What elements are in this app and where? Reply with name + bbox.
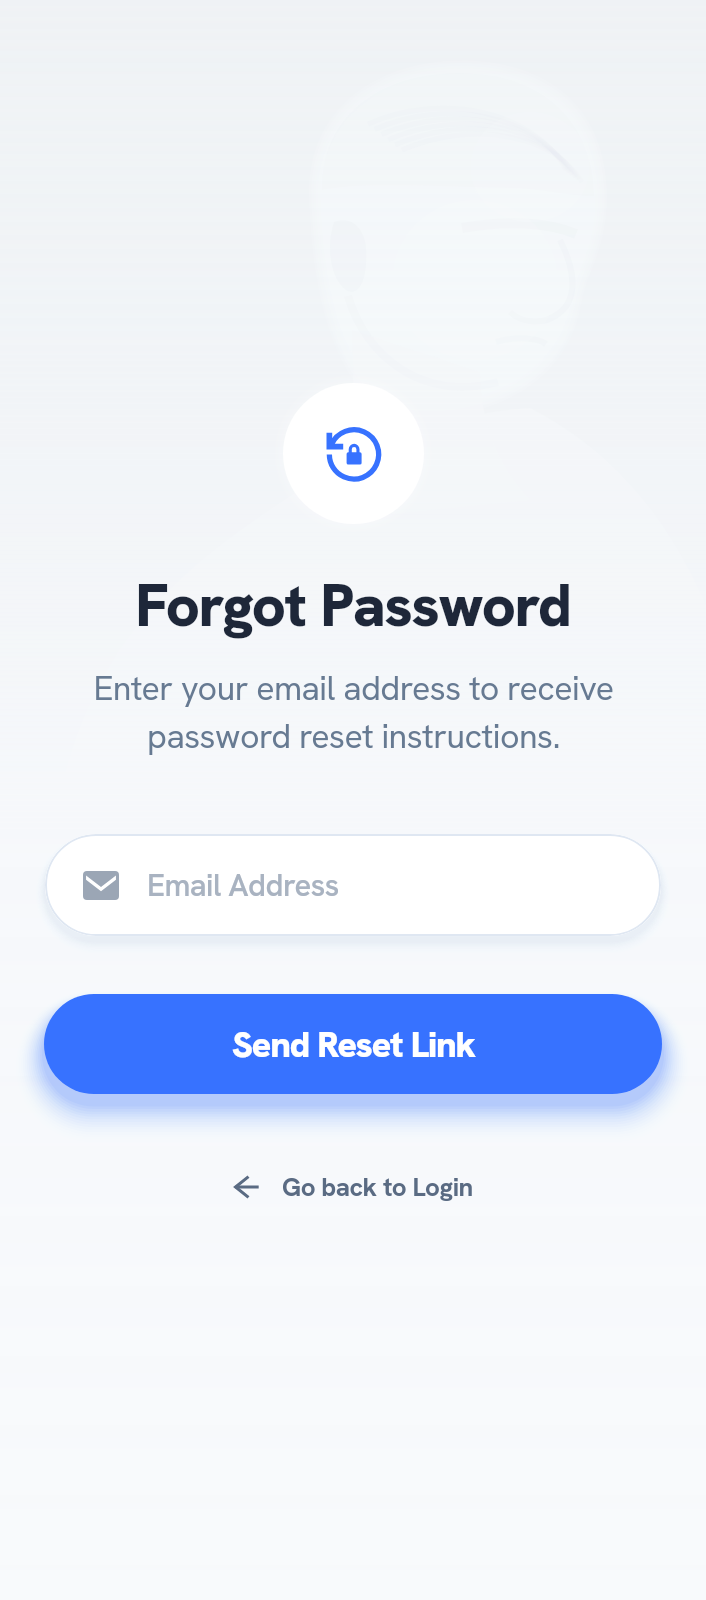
button[interactable]: Send Reset Link [44,994,662,1094]
staticText: Send Reset Link [232,1021,475,1068]
staticText: Email Address [147,865,339,905]
staticText: Go back to Login [282,1170,473,1204]
other: Reset password [326,426,382,482]
staticText: Forgot Password [135,566,571,644]
staticText: Enter your email address to receive pass… [93,666,614,758]
button[interactable]: Go back to Login [214,1160,493,1214]
button[interactable]: Email Address [45,834,661,936]
